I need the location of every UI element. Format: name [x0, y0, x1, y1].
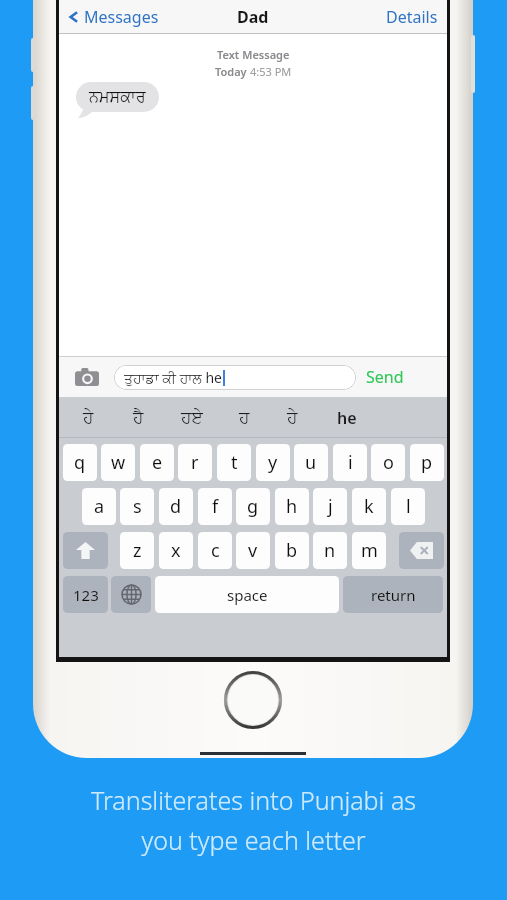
- button[interactable]: ਹੇ: [83, 397, 94, 438]
- staticText: Details: [386, 6, 438, 28]
- button[interactable]: Messages: [67, 0, 455, 33]
- button[interactable]: space: [155, 576, 339, 613]
- staticText: ਹੇ: [287, 409, 298, 426]
- button[interactable]: j: [313, 488, 347, 525]
- staticText: e: [152, 450, 163, 475]
- button[interactable]: b: [275, 532, 309, 569]
- button[interactable]: ਹੈ: [133, 397, 144, 438]
- button[interactable]: w: [101, 444, 135, 481]
- button[interactable]: m: [352, 532, 386, 569]
- button[interactable]: Change keyboard: [111, 576, 151, 613]
- button[interactable]: ਹੇ: [287, 397, 298, 438]
- staticText: space: [227, 585, 268, 605]
- button[interactable]: h: [275, 488, 309, 525]
- button[interactable]: v: [236, 532, 270, 569]
- staticText: ਹੈ: [133, 409, 144, 426]
- staticText: g: [247, 494, 259, 519]
- button[interactable]: k: [352, 488, 386, 525]
- button[interactable]: Camera: [71, 361, 103, 393]
- staticText: c: [211, 538, 220, 563]
- staticText: h: [286, 494, 298, 519]
- staticText: u: [305, 450, 317, 475]
- button[interactable]: f: [198, 488, 232, 525]
- staticText: Transliterates into Punjabi as: [91, 783, 416, 817]
- staticText: he: [337, 407, 357, 429]
- button[interactable]: return: [343, 576, 443, 613]
- staticText: 123: [73, 585, 99, 605]
- staticText: k: [364, 494, 374, 519]
- button[interactable]: p: [410, 444, 444, 481]
- button[interactable]: g: [236, 488, 270, 525]
- staticText: t: [231, 450, 238, 475]
- staticText: ਹ: [239, 409, 250, 426]
- staticText: m: [361, 538, 378, 563]
- button[interactable]: s: [120, 488, 154, 525]
- staticText: s: [133, 494, 142, 519]
- button[interactable]: Backspace: [399, 532, 444, 569]
- staticText: d: [170, 494, 182, 519]
- button[interactable]: Home: [223, 670, 283, 730]
- button[interactable]: l: [391, 488, 425, 525]
- staticText: l: [406, 494, 411, 519]
- button[interactable]: ਨਮਸਕਾਰ: [76, 82, 159, 112]
- button[interactable]: ਤੁਹਾਡਾ ਕੀ ਹਾਲ he: [114, 365, 356, 390]
- button[interactable]: y: [256, 444, 290, 481]
- button[interactable]: n: [313, 532, 347, 569]
- button[interactable]: he: [337, 397, 357, 438]
- staticText: Messages: [84, 6, 159, 28]
- staticText: Send: [366, 366, 404, 388]
- button[interactable]: u: [294, 444, 328, 481]
- staticText: p: [421, 450, 433, 475]
- staticText: return: [371, 585, 416, 605]
- button[interactable]: Details: [386, 0, 447, 33]
- staticText: x: [171, 538, 181, 563]
- button[interactable]: t: [217, 444, 251, 481]
- staticText: q: [74, 450, 86, 475]
- staticText: o: [383, 450, 394, 475]
- button[interactable]: q: [63, 444, 97, 481]
- staticText: v: [248, 538, 258, 563]
- button[interactable]: ਹਏ: [181, 397, 203, 438]
- button[interactable]: ਹ: [239, 397, 250, 438]
- staticText: a: [94, 494, 105, 519]
- button[interactable]: 123: [63, 576, 108, 613]
- staticText: r: [191, 450, 199, 475]
- staticText: ਹੇ: [83, 409, 94, 426]
- button[interactable]: d: [159, 488, 193, 525]
- staticText: b: [286, 538, 298, 563]
- staticText: ਤੁਹਾਡਾ ਕੀ ਹਾਲ he: [124, 368, 222, 387]
- staticText: ਹਏ: [181, 409, 203, 426]
- button[interactable]: e: [140, 444, 174, 481]
- button[interactable]: a: [82, 488, 116, 525]
- staticText: z: [133, 538, 142, 563]
- staticText: 4:53 PM: [250, 64, 292, 79]
- staticText: w: [111, 450, 126, 475]
- staticText: f: [212, 494, 219, 519]
- staticText: Dad: [237, 6, 269, 28]
- button[interactable]: c: [198, 532, 232, 569]
- button[interactable]: r: [178, 444, 212, 481]
- staticText: j: [328, 494, 333, 519]
- button[interactable]: i: [333, 444, 367, 481]
- staticText: ਨਮਸਕਾਰ: [89, 89, 146, 105]
- button[interactable]: x: [159, 532, 193, 569]
- button[interactable]: z: [120, 532, 154, 569]
- staticText: i: [348, 450, 353, 475]
- button[interactable]: Send: [366, 357, 404, 397]
- staticText: you type each letter: [141, 823, 366, 857]
- staticText: Today: [215, 64, 250, 79]
- button[interactable]: Shift: [63, 532, 108, 569]
- button[interactable]: o: [371, 444, 405, 481]
- staticText: Text Message: [217, 47, 290, 62]
- staticText: n: [324, 538, 336, 563]
- staticText: y: [268, 450, 278, 475]
